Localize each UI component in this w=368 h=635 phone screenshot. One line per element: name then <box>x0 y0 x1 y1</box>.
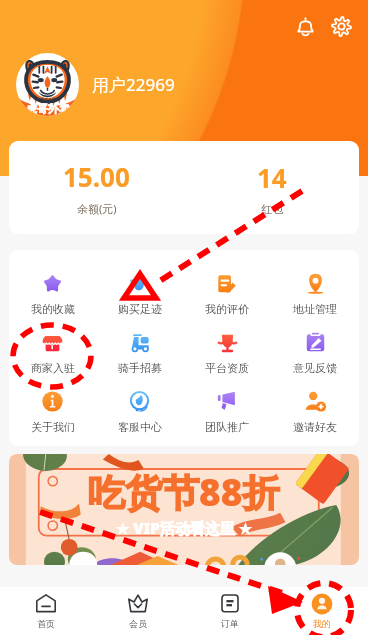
button[interactable]: 商家入驻 <box>9 331 96 390</box>
button[interactable]: 骑手招募 <box>96 331 183 390</box>
staticText: 关于我们 <box>31 420 75 434</box>
staticText: 15.00 <box>63 159 130 194</box>
button[interactable]: 平台资质 <box>183 331 271 390</box>
staticText: 我的评价 <box>205 302 249 316</box>
staticText: 用户22969 <box>92 73 175 96</box>
button[interactable]: 邀请好友 <box>271 390 359 446</box>
button[interactable]: Notifications <box>290 11 320 41</box>
button[interactable]: 我的收藏 <box>9 272 96 331</box>
staticText: 商家入驻 <box>31 361 75 375</box>
staticText: 地址管理 <box>293 302 337 316</box>
button[interactable]: 我的评价 <box>183 272 271 331</box>
staticText: 红包 <box>261 202 283 216</box>
staticText: 虎哥外卖 <box>26 102 70 116</box>
button[interactable]: Settings <box>326 11 356 41</box>
staticText: 14 <box>257 160 287 195</box>
button[interactable]: 地址管理 <box>271 272 359 331</box>
staticText: 虎哥外卖 <box>40 97 56 102</box>
staticText: 会员 <box>129 618 147 629</box>
staticText: 订单 <box>221 618 239 629</box>
staticText: 余额(元) <box>77 201 117 216</box>
button[interactable]: 关于我们 <box>9 390 96 446</box>
button[interactable]: 首页 <box>0 587 92 635</box>
button[interactable]: 14 <box>184 141 359 234</box>
staticText: 我的收藏 <box>31 302 75 316</box>
button[interactable]: 客服中心 <box>96 390 183 446</box>
button[interactable]: 购买足迹 <box>96 272 183 331</box>
staticText: 客服中心 <box>118 420 162 434</box>
button[interactable]: 意见反馈 <box>271 331 359 390</box>
staticText: 意见反馈 <box>293 361 337 375</box>
button[interactable]: 会员 <box>92 587 184 635</box>
staticText: 团队推广 <box>205 420 249 434</box>
staticText: 购买足迹 <box>118 302 162 316</box>
button[interactable]: 我的 <box>276 587 368 635</box>
staticText: 平台资质 <box>205 361 249 375</box>
button[interactable]: 订单 <box>184 587 276 635</box>
staticText: ★ VIP活动看这里 ★ <box>116 518 253 538</box>
staticText: 吃货节88折 <box>88 466 280 517</box>
staticText: 邀请好友 <box>293 420 337 434</box>
staticText: 我的 <box>313 618 331 629</box>
button[interactable]: 吃货节88折 <box>9 454 359 565</box>
staticText: 骑手招募 <box>118 361 162 375</box>
button[interactable]: 15.00 <box>9 141 184 234</box>
button[interactable]: 虎哥外卖 <box>16 53 175 116</box>
button[interactable]: 团队推广 <box>183 390 271 446</box>
staticText: 首页 <box>37 618 55 629</box>
